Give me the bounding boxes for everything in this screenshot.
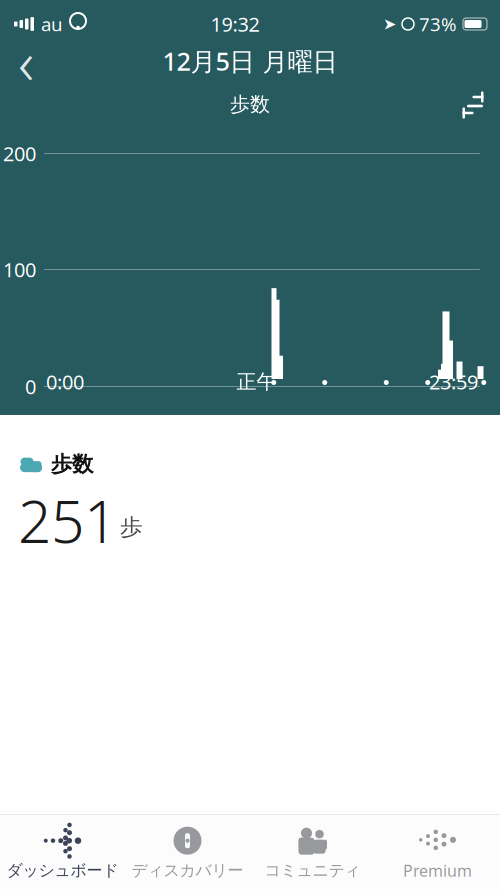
button[interactable]: グラフを拡大 [458, 90, 500, 120]
button[interactable]: Premium [375, 817, 500, 887]
staticText: コミュニティ [264, 861, 360, 880]
staticText: 100 [3, 256, 36, 283]
staticText: 73% [419, 12, 457, 36]
staticText: 歩数 [230, 92, 270, 117]
staticText: 正午 [236, 369, 276, 394]
staticText: 19:32 [210, 11, 259, 37]
staticText: 23:59 [429, 368, 478, 395]
staticText: au [41, 12, 63, 36]
staticText: Premium [403, 860, 472, 881]
button[interactable]: ダッシュボード [0, 818, 125, 886]
button[interactable]: 歩数 [0, 415, 500, 559]
staticText: 12月5日 月曜日 [162, 44, 337, 78]
button[interactable]: 戻る [4, 39, 48, 83]
staticText: 歩数 [51, 451, 93, 477]
staticText: 歩 [120, 513, 143, 541]
staticText: ディスカバリー [131, 861, 243, 880]
button[interactable]: ディスカバリー [125, 818, 250, 886]
staticText: 200 [3, 140, 36, 167]
staticText: 251 [18, 481, 117, 559]
staticText: 0 [25, 373, 36, 400]
staticText: 0:00 [46, 368, 84, 395]
staticText: ➤ [383, 15, 396, 33]
staticText: ダッシュボード [6, 861, 118, 880]
staticText: ‹ [18, 20, 34, 102]
button[interactable]: コミュニティ [250, 818, 375, 886]
